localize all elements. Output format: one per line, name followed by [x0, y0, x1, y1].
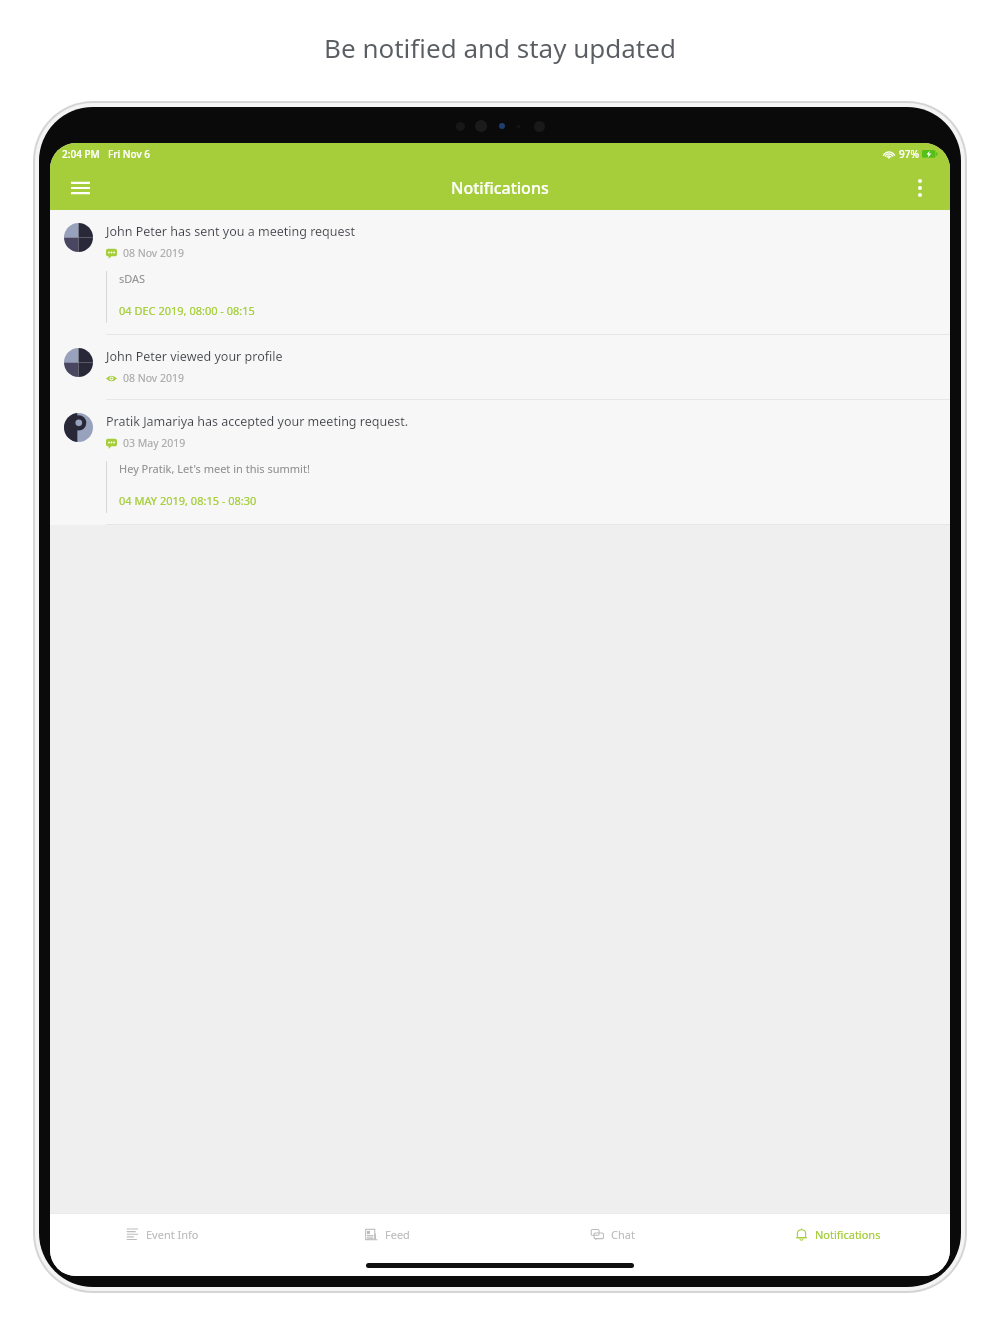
button[interactable]: Feed [275, 1214, 500, 1254]
button[interactable]: Notifications [725, 1214, 950, 1254]
staticText: John Peter has sent you a meeting reques… [106, 223, 356, 240]
staticText: Be notified and stay updated [324, 30, 676, 65]
staticText: Notifications [815, 1227, 881, 1242]
staticText: Fri Nov 6 [108, 147, 151, 161]
staticText: Chat [611, 1227, 635, 1242]
staticText: 2:04 PM [62, 147, 100, 161]
staticText: Feed [385, 1227, 410, 1242]
staticText: 04 DEC 2019, 08:00 - 08:15 [119, 303, 255, 318]
button[interactable]: Pratik Jamariya has accepted your meetin… [50, 400, 950, 525]
staticText: 08 Nov 2019 [123, 246, 184, 260]
staticText: 97% [899, 147, 919, 161]
staticText: 04 MAY 2019, 08:15 - 08:30 [119, 493, 257, 508]
staticText: John Peter viewed your profile [106, 348, 283, 365]
button[interactable]: More options [900, 168, 940, 208]
button[interactable]: John Peter has sent you a meeting reques… [50, 210, 950, 335]
button[interactable]: Event Info [50, 1214, 275, 1254]
staticText: 03 May 2019 [123, 436, 186, 450]
button[interactable]: Open navigation menu [60, 168, 100, 208]
staticText: Notifications [451, 177, 549, 199]
staticText: Pratik Jamariya has accepted your meetin… [106, 413, 409, 430]
button[interactable]: Chat [500, 1214, 725, 1254]
staticText: 08 Nov 2019 [123, 371, 184, 385]
staticText: sDAS [119, 271, 146, 286]
button[interactable]: John Peter viewed your profile [50, 335, 950, 400]
staticText: Hey Pratik, Let's meet in this summit! [119, 461, 310, 476]
staticText: Event Info [146, 1227, 199, 1242]
